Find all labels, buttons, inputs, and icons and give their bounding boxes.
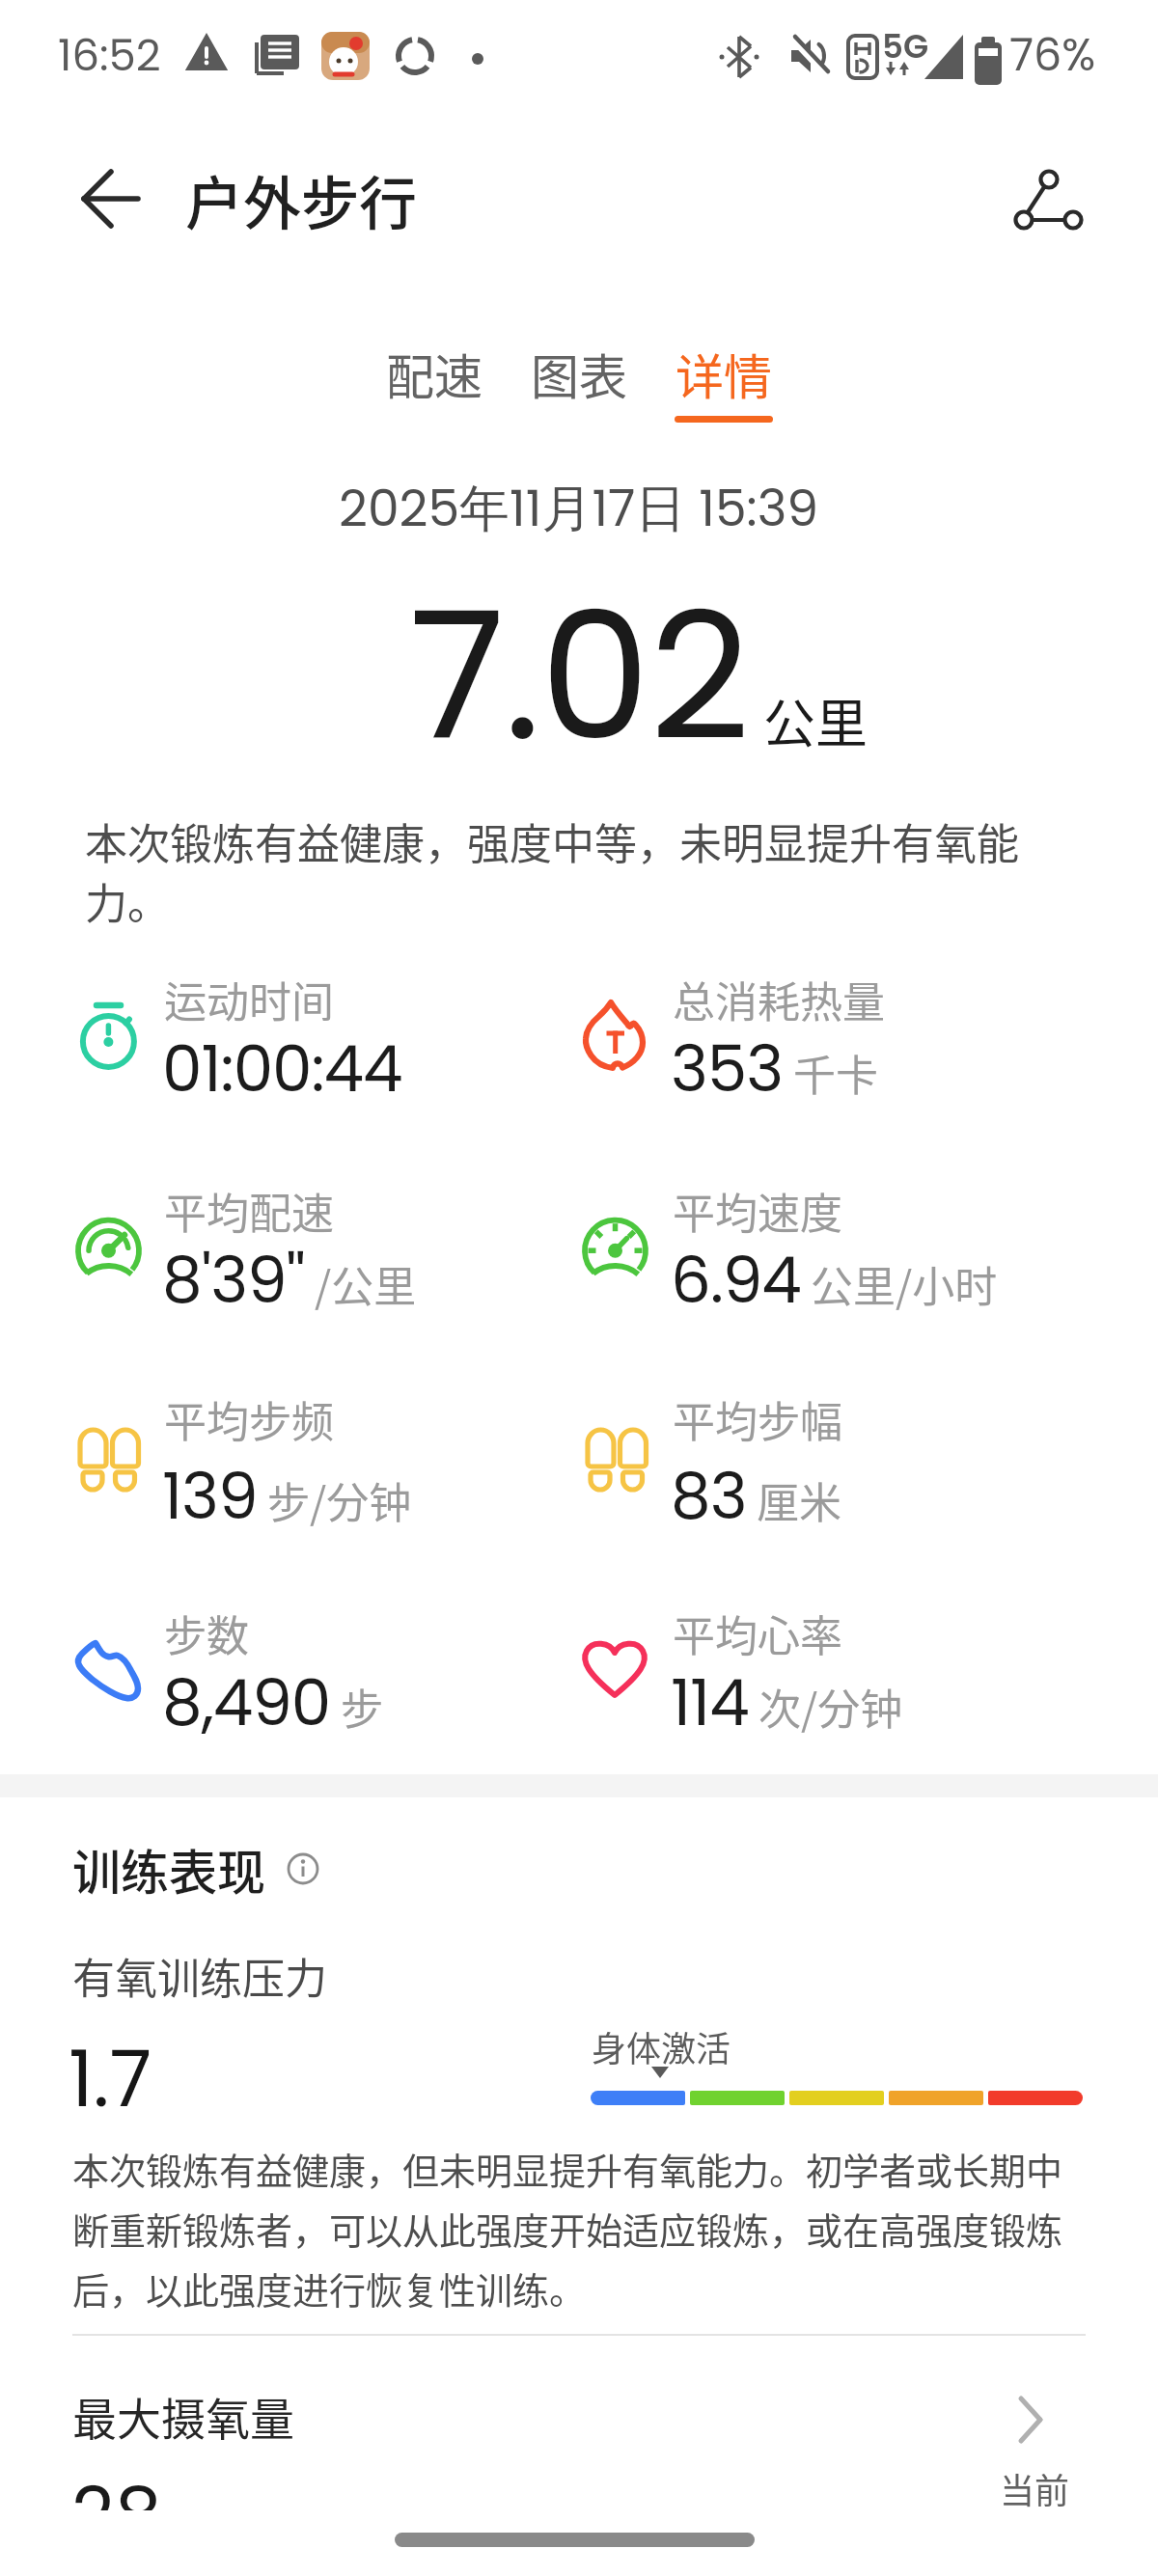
staticText: 83 (671, 1452, 747, 1541)
staticText: 厘米 (757, 1469, 841, 1531)
staticText: 01:00:44 (162, 1025, 402, 1113)
staticText: 114 (671, 1658, 749, 1747)
staticText: 平均心率 (673, 1603, 842, 1664)
staticText: 步/分钟 (267, 1469, 412, 1531)
staticText: 有氧训练压力 (72, 1945, 327, 2007)
staticText: 8,490 (162, 1658, 331, 1747)
staticText: 身体激活 (592, 2021, 731, 2071)
staticText: 28 (71, 2462, 163, 2510)
staticText: 公里 (763, 682, 868, 757)
button[interactable]: 图表 (511, 318, 647, 415)
button[interactable]: 配速 (367, 318, 502, 415)
staticText: 运动时间 (164, 969, 334, 1030)
staticText: 千卡 (793, 1042, 878, 1104)
staticText: 6.94 (671, 1236, 801, 1325)
button[interactable]: 最大摄氧量 (0, 2354, 1158, 2480)
staticText: 平均步频 (164, 1388, 334, 1450)
staticText: 353 (671, 1025, 784, 1113)
staticText: 公里/小时 (811, 1253, 998, 1315)
staticText: /公里 (315, 1253, 417, 1315)
staticText: 8'39'' (162, 1236, 305, 1325)
staticText: 2025年11月17日 15:39 (339, 473, 819, 543)
staticText: 训练表现 (72, 1834, 265, 1904)
button[interactable] (1000, 154, 1096, 241)
staticText: 最大摄氧量 (72, 2384, 294, 2449)
staticText: 7.02 (409, 554, 750, 800)
staticText: 当前 (1000, 2463, 1070, 2513)
button[interactable] (68, 154, 154, 241)
staticText: 配速 (386, 339, 482, 408)
staticText: 1.7 (69, 2025, 152, 2133)
staticText: 本次锻炼有益健康，但未明显提升有氧能力。初学者或长期中 断重新锻炼者，可以从此强… (72, 2142, 1063, 2315)
staticText: 平均速度 (673, 1180, 842, 1242)
staticText: 5G (882, 23, 929, 69)
staticText: 139 (162, 1452, 258, 1541)
staticText: 总消耗热量 (673, 969, 885, 1030)
button[interactable] (282, 1848, 324, 1890)
staticText: 次/分钟 (758, 1676, 903, 1738)
staticText: 平均步幅 (673, 1388, 842, 1450)
staticText: 户外步行 (185, 157, 417, 241)
staticText: 步 (341, 1676, 383, 1738)
staticText: 步数 (164, 1603, 249, 1664)
staticText: 本次锻炼有益健康，强度中等，未明显提升有氧能 力。 (85, 810, 1019, 931)
staticText: 16:52 (58, 25, 161, 86)
staticText: 图表 (531, 339, 627, 408)
staticText: 76% (1009, 24, 1096, 86)
staticText: 平均配速 (164, 1180, 334, 1242)
button[interactable]: 详情 (656, 318, 791, 415)
staticText: 详情 (675, 339, 772, 408)
